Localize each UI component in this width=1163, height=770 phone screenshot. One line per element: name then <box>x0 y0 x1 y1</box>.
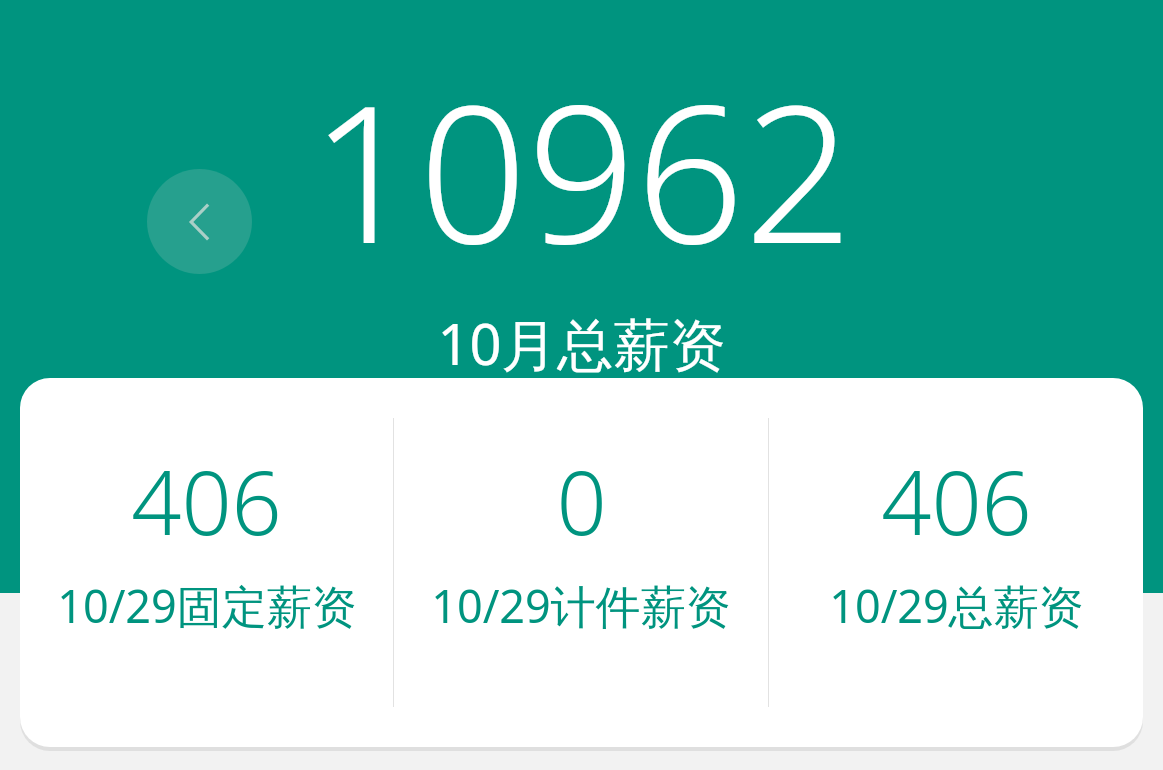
staticText: 10962 <box>310 40 853 299</box>
staticText: 406 <box>131 441 282 561</box>
button[interactable]: 406 <box>20 378 393 747</box>
button[interactable]: 0 <box>394 378 768 747</box>
staticText: 10/29总薪资 <box>829 575 1084 636</box>
staticText: 406 <box>881 441 1032 561</box>
button[interactable]: Back <box>147 169 252 274</box>
staticText: 10/29计件薪资 <box>431 575 731 636</box>
staticText: 10/29固定薪资 <box>57 575 357 636</box>
staticText: 0 <box>556 441 607 561</box>
staticText: 10月总薪资 <box>437 305 726 381</box>
button[interactable]: 406 <box>769 378 1143 747</box>
